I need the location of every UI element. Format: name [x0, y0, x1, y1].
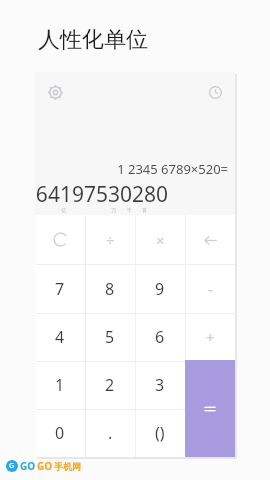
staticText: 1	[55, 374, 65, 396]
button[interactable]: 3	[135, 361, 185, 409]
staticText: 9	[155, 278, 165, 300]
staticText: 7	[55, 278, 65, 300]
staticText: 8	[105, 278, 115, 300]
button[interactable]: 1	[35, 361, 85, 409]
staticText: 4	[55, 326, 65, 348]
staticText: ÷	[106, 230, 115, 250]
button[interactable]: 9	[135, 264, 185, 313]
staticText: 64197530280	[35, 180, 168, 209]
button[interactable]: Backspace	[185, 215, 235, 264]
staticText: ()	[155, 422, 165, 444]
button[interactable]: ×	[135, 215, 185, 264]
staticText: 0	[55, 422, 65, 444]
button[interactable]: Settings	[43, 80, 67, 104]
button[interactable]: +	[185, 313, 235, 361]
staticText: 亿	[61, 207, 66, 213]
staticText: 手机网	[54, 461, 81, 472]
button[interactable]: -	[185, 264, 235, 313]
staticText: 5	[105, 326, 115, 348]
other: Backspace	[199, 229, 221, 251]
button[interactable]: ()	[135, 409, 185, 457]
button[interactable]: 4	[35, 313, 85, 361]
button[interactable]: 6	[135, 313, 185, 361]
staticText: 1 2345 6789×520=	[117, 160, 228, 178]
button[interactable]: 0	[35, 409, 85, 457]
staticText: -	[208, 279, 213, 299]
button[interactable]: .	[85, 409, 135, 457]
staticText: .	[108, 422, 113, 444]
staticText: 2	[105, 374, 115, 396]
staticText: G	[9, 461, 15, 471]
staticText: GO	[20, 459, 36, 473]
staticText: 千	[127, 207, 132, 213]
staticText: GO	[37, 459, 53, 473]
button[interactable]: Equals	[185, 360, 235, 457]
button[interactable]	[35, 215, 85, 264]
button[interactable]: 2	[85, 361, 135, 409]
button[interactable]: ÷	[85, 215, 135, 264]
staticText: +	[206, 327, 215, 347]
button[interactable]: 5	[85, 313, 135, 361]
button[interactable]: 8	[85, 264, 135, 313]
button[interactable]: 7	[35, 264, 85, 313]
button[interactable]: History	[203, 80, 227, 104]
staticText: 6	[155, 326, 165, 348]
staticText: 万	[111, 207, 116, 213]
staticText: 人性化单位	[38, 26, 148, 54]
staticText: 3	[155, 374, 165, 396]
staticText: 百	[142, 207, 147, 213]
staticText: ×	[156, 230, 165, 250]
